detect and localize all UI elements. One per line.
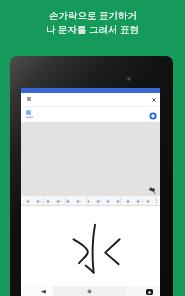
button[interactable] xyxy=(113,196,123,206)
button[interactable] xyxy=(103,196,113,206)
button[interactable]: Home xyxy=(79,286,99,296)
button[interactable] xyxy=(43,196,53,206)
button[interactable]: Back xyxy=(33,286,53,296)
button[interactable] xyxy=(26,110,33,119)
button[interactable] xyxy=(33,196,43,206)
button[interactable] xyxy=(23,196,33,206)
staticText: 나 문자를 그려서 표현 xyxy=(46,23,139,36)
staticText: 손가락으로 표기하거 xyxy=(49,9,137,22)
button[interactable] xyxy=(123,196,133,206)
button[interactable]: Screenshot xyxy=(139,286,159,296)
button[interactable]: Close xyxy=(152,98,156,102)
button[interactable]: Menu xyxy=(27,97,31,101)
button[interactable] xyxy=(53,196,63,206)
button[interactable] xyxy=(73,196,83,206)
button[interactable] xyxy=(83,196,93,206)
button[interactable] xyxy=(133,196,143,206)
button[interactable] xyxy=(63,196,73,206)
button[interactable]: Insert xyxy=(149,112,157,120)
button[interactable] xyxy=(93,196,103,206)
button[interactable]: Move xyxy=(149,187,156,194)
button[interactable] xyxy=(143,196,153,206)
